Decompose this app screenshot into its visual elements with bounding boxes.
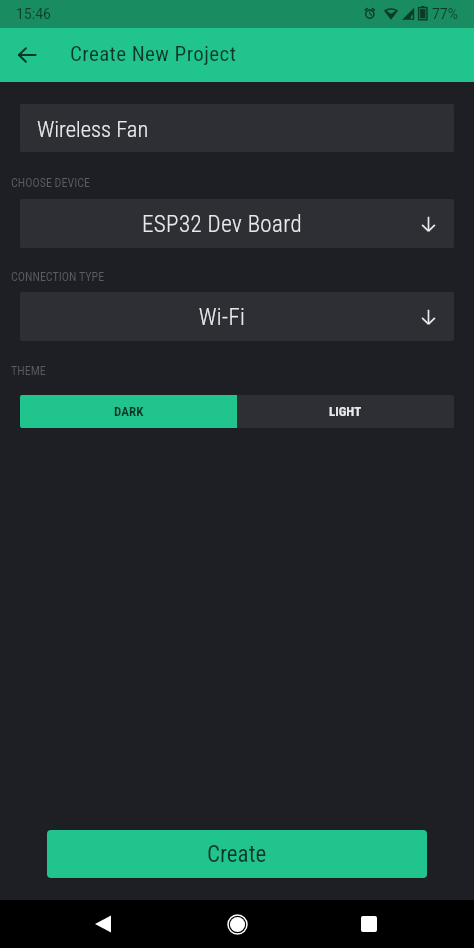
other: Expand (415, 211, 441, 237)
staticText: Create New Project (70, 42, 237, 67)
button[interactable]: Back (79, 900, 127, 948)
button[interactable]: DARK (20, 395, 237, 428)
button[interactable]: Create (47, 830, 427, 878)
staticText: Wi-Fi (29, 304, 415, 331)
staticText: ESP32 Dev Board (29, 211, 415, 238)
staticText: CONNECTION TYPE (11, 270, 105, 284)
staticText: DARK (114, 404, 144, 419)
staticText: CHOOSE DEVICE (11, 176, 90, 190)
button[interactable]: Back (7, 35, 47, 75)
staticText: THEME (11, 364, 46, 378)
button[interactable]: Home (213, 900, 261, 948)
staticText: Wireless Fan (37, 116, 149, 142)
other: Expand (415, 304, 441, 330)
button[interactable]: Wireless Fan (20, 104, 454, 152)
button[interactable]: Recents (345, 900, 393, 948)
button[interactable]: ESP32 Dev Board (20, 199, 454, 248)
staticText: LIGHT (329, 404, 362, 419)
button[interactable]: LIGHT (237, 395, 454, 428)
staticText: Create (207, 841, 267, 868)
staticText: 15:46 (16, 6, 51, 22)
button[interactable]: Wi-Fi (20, 292, 454, 341)
staticText: 77% (432, 6, 458, 22)
